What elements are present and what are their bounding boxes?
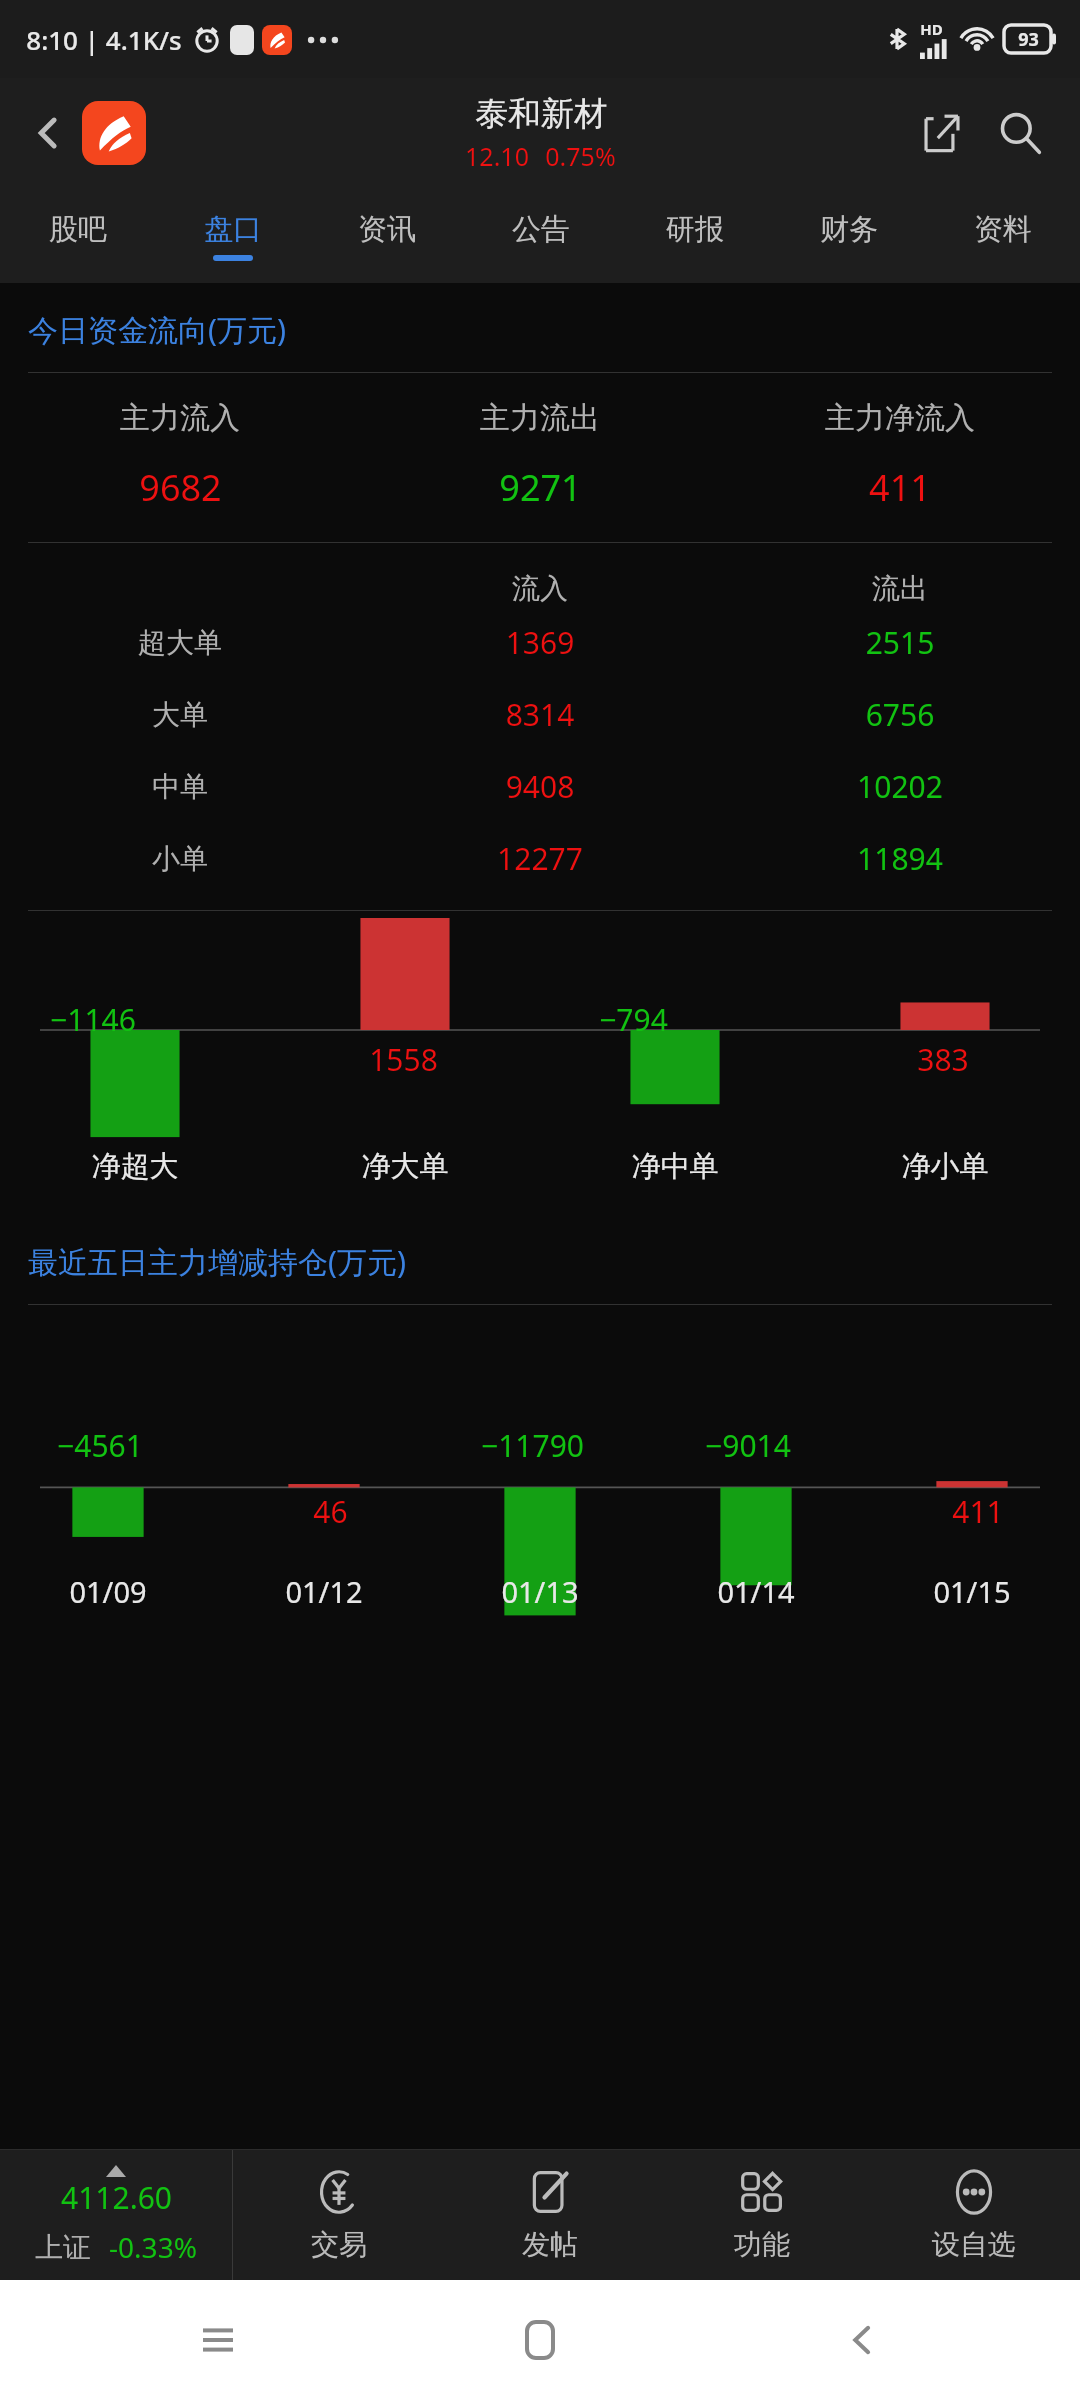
staticText: -0.33% [109, 2228, 197, 2266]
button[interactable]: 功能 [656, 2150, 868, 2280]
button[interactable]: 盘口 [155, 188, 310, 283]
button[interactable]: 研报 [618, 188, 772, 283]
staticText: 大单 [0, 697, 360, 732]
staticText: 411 [869, 463, 931, 512]
staticText: 股吧 [49, 211, 107, 248]
staticText: −4561 [57, 1425, 143, 1466]
button[interactable]: Home [492, 2292, 588, 2388]
staticText: 流出 [720, 571, 1080, 606]
button[interactable]: 股吧 [0, 188, 155, 283]
staticText: 研报 [666, 211, 724, 248]
staticText: 12.10 [465, 139, 529, 173]
staticText: 中单 [0, 769, 360, 804]
staticText: 2515 [720, 622, 1080, 663]
staticText: 主力流出 [480, 399, 600, 437]
staticText: 6756 [720, 694, 1080, 735]
staticText: 01/12 [216, 1572, 432, 1611]
staticText: 公告 [512, 211, 570, 248]
staticText: 财务 [820, 211, 878, 248]
staticText: 净超大 [0, 1148, 270, 1185]
staticText: 今日资金流向(万元) [28, 309, 286, 350]
staticText: 01/09 [0, 1572, 216, 1611]
staticText: HD [920, 19, 943, 39]
staticText: 设自选 [932, 2227, 1016, 2262]
staticText: 01/13 [432, 1572, 648, 1611]
staticText: −11790 [481, 1425, 584, 1466]
staticText: 净大单 [270, 1148, 540, 1185]
staticText: 盘口 [204, 211, 262, 248]
staticText: 超大单 [0, 625, 360, 660]
button[interactable]: Search [984, 97, 1056, 169]
staticText: 9271 [499, 463, 582, 512]
staticText: 泰和新材 [475, 93, 607, 135]
button[interactable]: Back [814, 2292, 910, 2388]
button[interactable]: 资讯 [310, 188, 464, 283]
button[interactable]: 4112.60 [0, 2150, 232, 2280]
staticText: 1369 [360, 622, 720, 663]
button[interactable]: App icon [82, 101, 146, 165]
staticText: 流入 [360, 571, 720, 606]
button[interactable]: 交易 [233, 2150, 444, 2280]
staticText: 9682 [139, 463, 222, 512]
staticText: 4112.60 [61, 2177, 172, 2218]
staticText: 8314 [360, 694, 720, 735]
button[interactable]: 财务 [772, 188, 926, 283]
staticText: 1558 [369, 1039, 438, 1080]
staticText: −794 [599, 999, 668, 1040]
staticText: 净小单 [810, 1148, 1080, 1185]
staticText: 小单 [0, 841, 360, 876]
staticText: 功能 [734, 2227, 790, 2262]
staticText: 12277 [360, 838, 720, 879]
staticText: 11894 [720, 838, 1080, 879]
button[interactable]: Back [18, 103, 78, 163]
staticText: 0.75% [545, 139, 616, 173]
staticText: 93 [1018, 27, 1039, 52]
staticText: 8:10 | 4.1K/s [26, 22, 182, 57]
button[interactable]: Recents [170, 2292, 266, 2388]
staticText: 9408 [360, 766, 720, 807]
staticText: 交易 [311, 2227, 367, 2262]
staticText: −9014 [705, 1425, 791, 1466]
staticText: 46 [313, 1491, 348, 1532]
button[interactable]: 发帖 [444, 2150, 656, 2280]
button[interactable]: 公告 [464, 188, 618, 283]
staticText: 净中单 [540, 1148, 810, 1185]
staticText: 发帖 [522, 2227, 578, 2262]
staticText: 411 [952, 1491, 1004, 1532]
staticText: 10202 [720, 766, 1080, 807]
staticText: 主力流入 [120, 399, 240, 437]
staticText: 资料 [974, 211, 1032, 248]
button[interactable]: 设自选 [868, 2150, 1080, 2280]
button[interactable]: 资料 [926, 188, 1080, 283]
staticText: 资讯 [358, 211, 416, 248]
staticText: 最近五日主力增减持仓(万元) [28, 1241, 406, 1282]
staticText: −1146 [50, 999, 136, 1040]
staticText: 383 [917, 1039, 969, 1080]
staticText: 01/14 [648, 1572, 864, 1611]
button[interactable]: Share [908, 99, 976, 167]
staticText: 01/15 [864, 1572, 1080, 1611]
staticText: 上证 [35, 2230, 91, 2265]
staticText: 主力净流入 [825, 399, 975, 437]
